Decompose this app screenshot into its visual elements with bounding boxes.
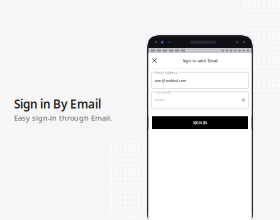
staticText: Sign in with Email (182, 58, 217, 63)
staticText: Sign in By Email (14, 96, 101, 112)
button[interactable]: Close (148, 53, 161, 68)
staticText: tum@webkul.com (155, 78, 187, 83)
staticText: Password (155, 90, 171, 94)
staticText: Email address (155, 71, 178, 75)
button[interactable]: SIGN IN (152, 116, 248, 129)
staticText: Easy sign-in through Email. (14, 113, 112, 123)
button[interactable]: Show password (241, 98, 245, 102)
staticText: SIGN IN (193, 120, 207, 125)
